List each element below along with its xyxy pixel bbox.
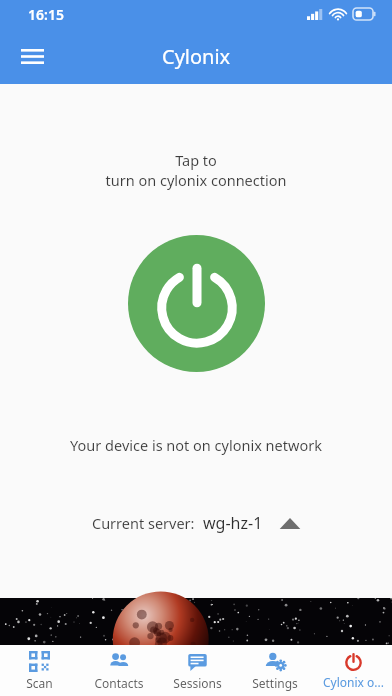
staticText: Tap to turn on cylonix connection: [0, 150, 392, 190]
staticText: Settings: [252, 675, 298, 691]
button[interactable]: Contacts: [79, 645, 158, 696]
staticText: Contacts: [94, 675, 144, 691]
staticText: Current server:: [92, 513, 195, 533]
button[interactable]: Scan: [0, 645, 79, 696]
button[interactable]: Settings: [236, 645, 314, 696]
button[interactable]: Cylonix o...: [314, 645, 392, 696]
staticText: Cylonix: [162, 43, 231, 70]
staticText: 16:15: [28, 5, 64, 24]
staticText: wg-hz-1: [203, 512, 263, 534]
button[interactable]: Open navigation menu: [8, 32, 56, 80]
button[interactable]: Turn on cylonix connection: [128, 235, 265, 372]
button[interactable]: Current server:: [84, 508, 309, 538]
staticText: Scan: [26, 675, 53, 691]
staticText: Your device is not on cylonix network: [0, 435, 392, 455]
staticText: Sessions: [173, 675, 222, 691]
staticText: Cylonix o...: [323, 674, 384, 690]
button[interactable]: Sessions: [158, 645, 236, 696]
